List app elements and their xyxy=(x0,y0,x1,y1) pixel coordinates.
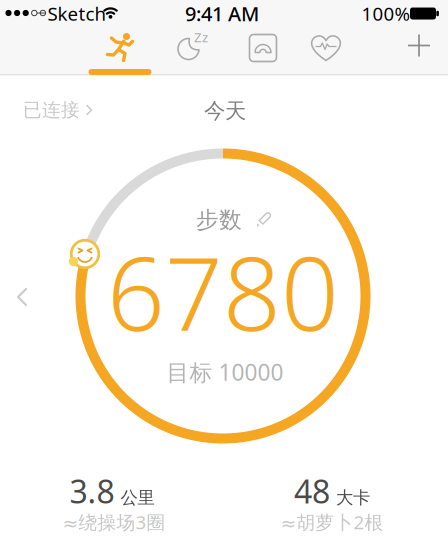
staticText: 今天 xyxy=(204,98,246,124)
staticText: 公里 xyxy=(120,487,154,508)
button[interactable]: Weight xyxy=(248,33,278,63)
staticText: ≈胡萝卜2根 xyxy=(280,510,383,534)
staticText: 已连接 xyxy=(23,98,80,121)
button[interactable]: Steps xyxy=(104,30,138,64)
staticText: 6780 xyxy=(107,224,339,359)
staticText: 大卡 xyxy=(336,487,370,508)
staticText: 目标 10000 xyxy=(166,357,283,387)
button[interactable]: Heart rate xyxy=(309,33,343,63)
staticText: 100% xyxy=(361,1,410,26)
button[interactable]: Add xyxy=(408,34,430,56)
staticText: ≈绕操场3圈 xyxy=(62,510,165,534)
staticText: 步数 xyxy=(196,206,242,234)
staticText: Zz xyxy=(194,28,208,46)
button[interactable]: Previous day xyxy=(16,287,27,306)
staticText: Sketch xyxy=(47,1,106,26)
button[interactable]: 已连接 xyxy=(20,95,96,125)
button[interactable]: Sleep xyxy=(174,32,210,64)
button[interactable]: 步数 xyxy=(189,205,279,235)
staticText: 3.8 xyxy=(69,470,114,512)
staticText: 48 xyxy=(294,470,330,512)
staticText: 9:41 AM xyxy=(185,0,259,27)
